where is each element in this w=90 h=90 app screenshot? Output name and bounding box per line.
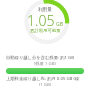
staticText: 上期料金繰り越し先: 約月 0.05 GB (繰越) <box>6 75 84 81</box>
staticText: GB <box>56 21 63 28</box>
staticText: (1 GB) <box>39 81 52 87</box>
staticText: 利用量 <box>38 7 52 13</box>
staticText: (残量 1 GB) <box>34 60 56 66</box>
staticText: 累計利用可能量 <box>30 28 61 34</box>
staticText: 自動繰り越し分を含む残量: 約1 GB <box>6 54 75 60</box>
staticText: 1.05 <box>27 11 55 30</box>
